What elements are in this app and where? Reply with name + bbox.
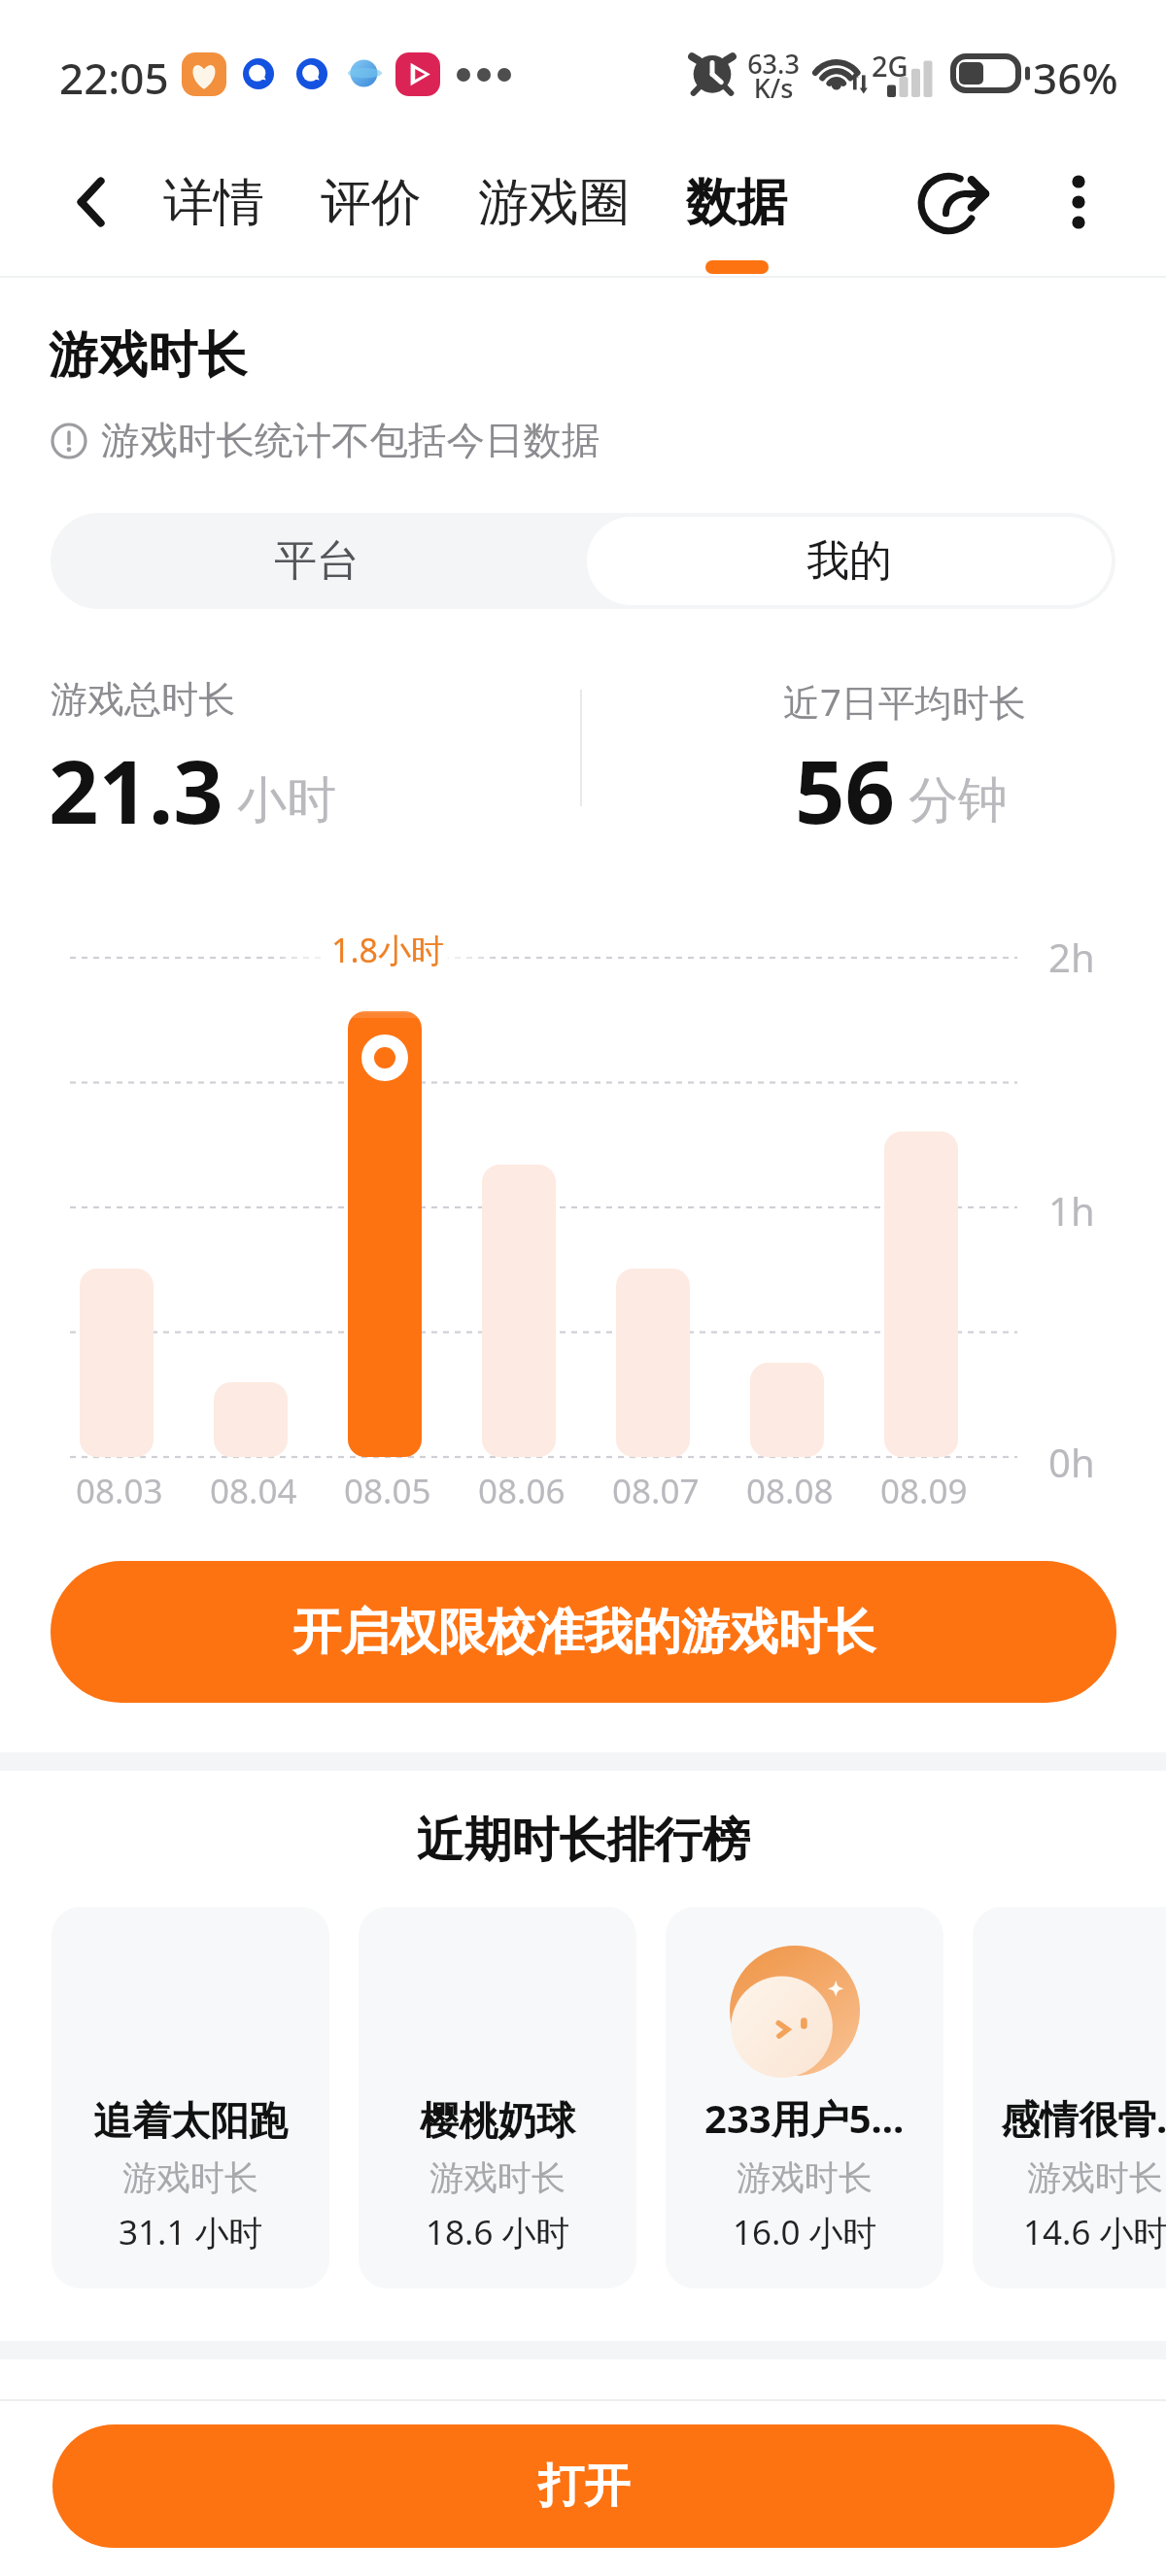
staticText: 56	[795, 730, 895, 850]
staticText: 2h	[1048, 931, 1095, 983]
button[interactable]: 打开	[52, 2424, 1115, 2548]
staticText: 31.1 小时	[119, 2209, 263, 2255]
button[interactable]: 开启权限校准我的游戏时长	[51, 1561, 1116, 1703]
staticText: 1.8小时	[331, 928, 445, 972]
staticText: 追着太阳跑	[93, 2096, 288, 2145]
staticText: 08.09	[880, 1468, 968, 1514]
staticText: 游戏时长	[429, 2156, 566, 2199]
staticText: 游戏时长	[737, 2156, 873, 2199]
staticText: 08.05	[344, 1468, 431, 1514]
staticText: 08.06	[478, 1468, 566, 1514]
staticText: 14.6 小时	[1023, 2209, 1166, 2255]
staticText: 18.6 小时	[426, 2209, 570, 2255]
staticText: 游戏总时长	[51, 676, 235, 723]
staticText: 2G	[872, 47, 909, 85]
button[interactable]: Share	[914, 160, 996, 242]
button[interactable]: 数据	[686, 171, 787, 274]
button[interactable]: 详情	[163, 171, 264, 274]
staticText: 36%	[1033, 49, 1118, 107]
staticText: 分钟	[909, 769, 1008, 831]
staticText: 08.08	[746, 1468, 834, 1514]
staticText: 游戏时长	[49, 324, 247, 387]
staticText: 游戏圈	[478, 171, 630, 235]
button[interactable]: 评价	[321, 171, 422, 274]
staticText: 0h	[1048, 1436, 1095, 1488]
staticText: 21.3	[49, 730, 223, 850]
button[interactable]: 感情很骨...	[973, 1907, 1166, 2288]
staticText: 游戏时长	[1027, 2156, 1163, 2199]
button[interactable]: 游戏圈	[478, 171, 630, 274]
staticText: 08.04	[210, 1468, 297, 1514]
staticText: 开启权限校准我的游戏时长	[292, 1602, 875, 1663]
button[interactable]: Back	[58, 168, 126, 236]
staticText: 近7日平均时长	[783, 676, 1026, 727]
staticText: 游戏时长	[122, 2156, 258, 2199]
staticText: 16.0 小时	[733, 2209, 877, 2255]
staticText: 1h	[1048, 1184, 1095, 1237]
staticText: 打开	[538, 2457, 630, 2515]
button[interactable]: 追着太阳跑	[51, 1907, 329, 2288]
staticText: 平台	[274, 534, 360, 588]
button[interactable]: 樱桃奶球	[359, 1907, 636, 2288]
staticText: 樱桃奶球	[420, 2096, 575, 2145]
staticText: 感情很骨...	[1001, 2091, 1166, 2145]
staticText: 233用户5...	[704, 2091, 905, 2145]
staticText: 数据	[686, 171, 787, 235]
staticText: 22:05	[59, 49, 169, 107]
staticText: 小时	[237, 769, 336, 831]
staticText: 08.03	[76, 1468, 163, 1514]
staticText: 我的	[806, 534, 892, 588]
button[interactable]: 233用户5...	[666, 1907, 943, 2288]
staticText: 63.3 K/s	[747, 46, 800, 106]
staticText: 游戏时长统计不包括今日数据	[101, 417, 600, 465]
staticText: 08.07	[612, 1468, 700, 1514]
button[interactable]: More options	[1049, 174, 1108, 232]
staticText: 近期时长排行榜	[0, 1811, 1166, 1871]
staticText: 评价	[321, 171, 422, 235]
button[interactable]: 我的	[587, 517, 1112, 605]
staticText: 详情	[163, 171, 264, 235]
button[interactable]: 平台	[51, 513, 583, 609]
